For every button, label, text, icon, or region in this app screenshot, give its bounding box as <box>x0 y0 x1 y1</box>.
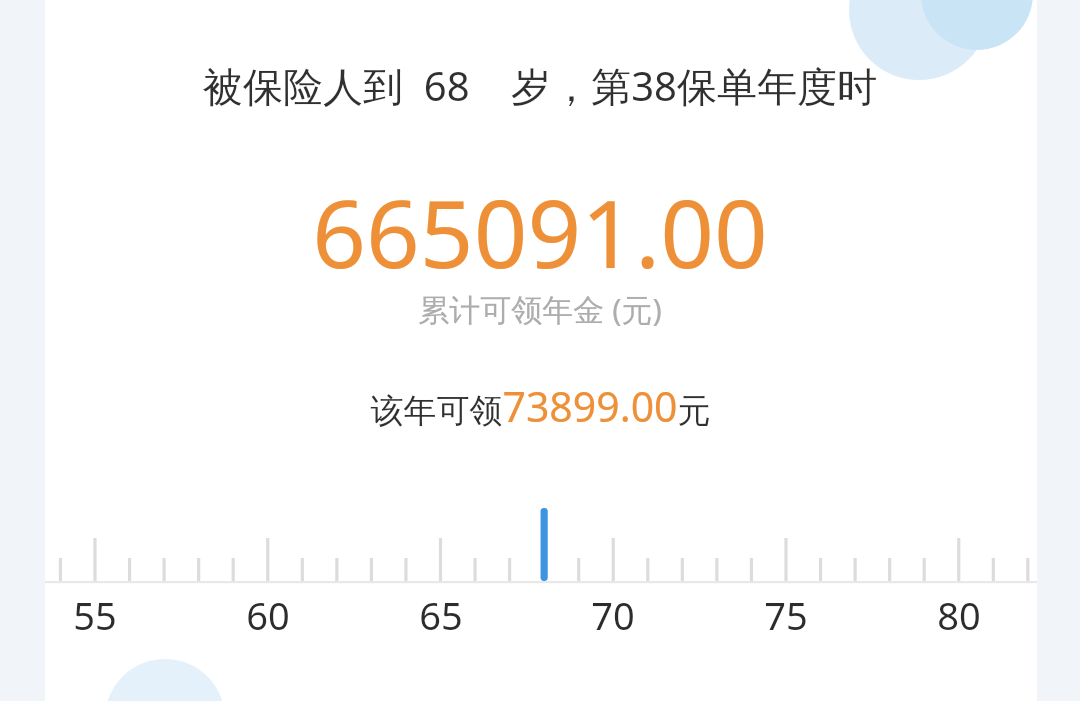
staticText: 该年可领73899.00元 <box>370 378 711 434</box>
staticText: 75 <box>764 589 808 641</box>
staticText: 累计可领年金 (元) <box>418 288 662 330</box>
staticText: 65 <box>419 589 463 641</box>
staticText: 55 <box>73 589 117 641</box>
button[interactable]: Age selector, current age 68 <box>0 0 1080 701</box>
staticText: 被保险人到 68 岁，第38保单年度时 <box>203 58 877 113</box>
staticText: 665091.00 <box>312 168 768 296</box>
staticText: 80 <box>937 589 981 641</box>
staticText: 70 <box>591 589 635 641</box>
staticText: 60 <box>246 589 290 641</box>
